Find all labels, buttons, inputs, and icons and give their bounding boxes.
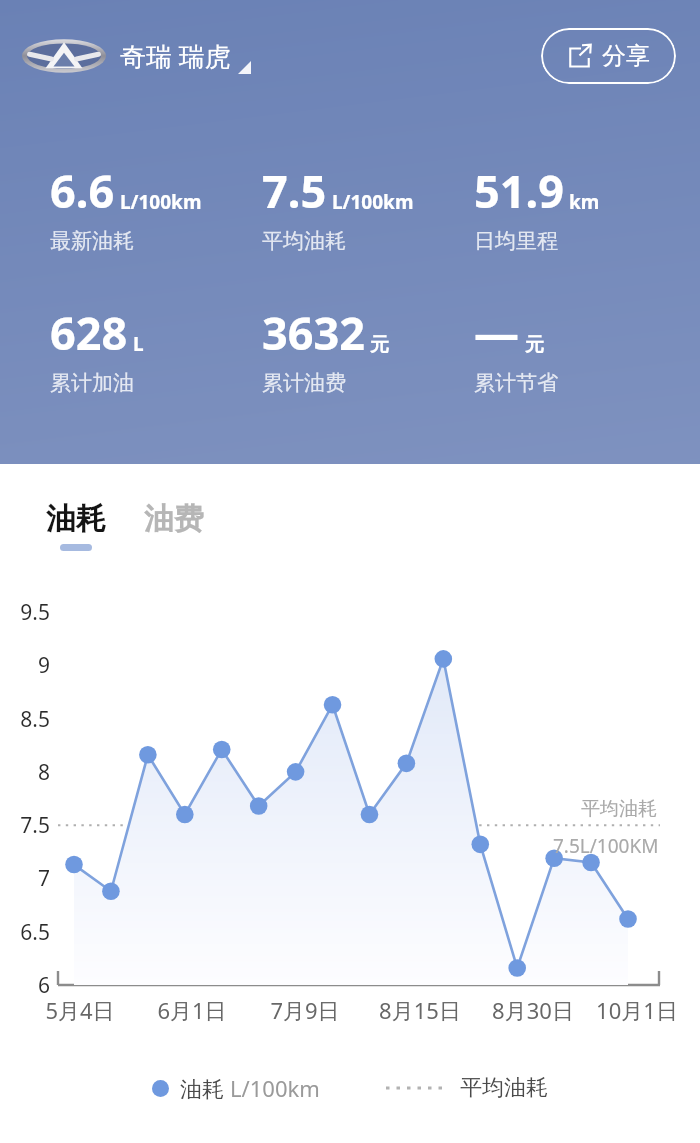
staticText: 3632 [262,302,365,363]
staticText: 7 [6,864,50,893]
other: Share [567,44,592,69]
staticText: 累计油费 [262,370,346,396]
staticText: 628 [50,302,128,363]
button[interactable]: 6.6 [50,160,262,254]
staticText: 6月1日 [142,995,242,1025]
staticText: 8月15日 [370,995,470,1025]
staticText: 油耗 [180,1073,230,1103]
button[interactable]: — [474,302,686,396]
button[interactable]: Share [541,28,676,84]
staticText: 累计节省 [474,370,558,396]
staticText: 平均油耗 [581,797,657,821]
button[interactable]: 油耗 [46,500,106,551]
staticText: 7.5 [262,160,327,221]
staticText: 10月1日 [587,995,687,1025]
staticText: — [474,302,520,363]
staticText: km [569,189,600,215]
staticText: 最新油耗 [50,228,134,254]
staticText: 9.5 [6,598,50,627]
staticText: 奇瑞 瑞虎 [120,38,231,74]
staticText: 油费 [144,500,204,538]
staticText: 8月30日 [483,995,583,1025]
staticText: L/100km [332,189,414,215]
staticText: 7.5 [6,811,50,840]
staticText: 51.9 [474,160,564,221]
staticText: 平均油耗 [262,228,346,254]
staticText: 分享 [602,41,650,71]
staticText: 9 [6,651,50,680]
staticText: 累计加油 [50,370,134,396]
button[interactable]: 628 [50,302,262,396]
staticText: 平均油耗 [460,1074,548,1102]
staticText: L/100km [230,1073,320,1103]
staticText: L/100km [120,189,202,215]
staticText: 8.5 [6,705,50,734]
staticText: 日均里程 [474,228,558,254]
staticText: 元 [370,333,389,357]
staticText: 油耗 [46,500,106,538]
staticText: 8 [6,758,50,787]
button[interactable]: 3632 [262,302,474,396]
button[interactable]: 7.5 [262,160,474,254]
staticText: 7.5L/100KM [553,833,659,859]
button[interactable]: 油费 [144,500,204,551]
staticText: 7月9日 [255,995,355,1025]
staticText: 5月4日 [30,995,130,1025]
staticText: 6 [6,971,50,1000]
staticText: L [133,331,144,357]
staticText: 元 [525,333,544,357]
button[interactable]: 51.9 [474,160,686,254]
staticText: 6.6 [50,160,115,221]
button[interactable]: 奇瑞 瑞虎 [22,35,251,77]
staticText: 6.5 [6,918,50,947]
